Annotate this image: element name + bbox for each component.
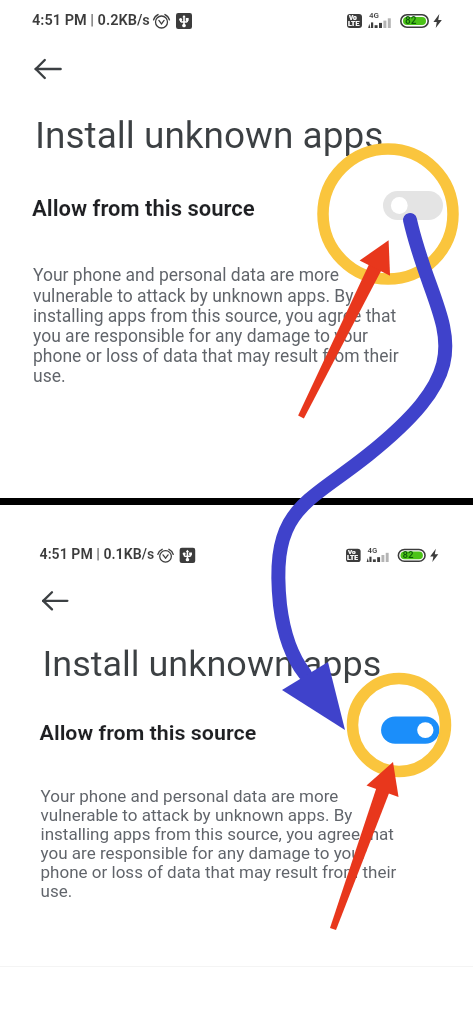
staticText: LTE: [348, 20, 360, 28]
staticText: Install unknown apps: [35, 114, 384, 157]
staticText: Your phone and personal data are more vu…: [33, 265, 418, 387]
staticText: 4G: [369, 11, 380, 20]
staticText: Vo: [348, 549, 356, 556]
button[interactable]: Allow from this source, on: [381, 716, 439, 744]
button[interactable]: Allow from this source: [0, 186, 473, 232]
staticText: Allow from this source: [39, 721, 256, 746]
staticText: Install unknown apps: [42, 643, 382, 684]
staticText: 4:51 PM | 0.1KB/s: [39, 547, 154, 563]
staticText: 4G: [367, 546, 378, 554]
staticText: LTE: [347, 554, 359, 562]
staticText: 82: [402, 550, 414, 561]
staticText: Your phone and personal data are more vu…: [40, 786, 415, 902]
button[interactable]: Allow from this source: [8, 712, 469, 755]
button[interactable]: Navigate back: [30, 52, 64, 86]
button[interactable]: Navigate back: [38, 585, 71, 617]
staticText: Allow from this source: [32, 196, 255, 222]
staticText: 82: [405, 15, 417, 27]
staticText: Vo: [349, 14, 357, 22]
button[interactable]: Allow from this source, off: [383, 191, 443, 220]
staticText: 4:51 PM | 0.2KB/s: [32, 12, 150, 29]
